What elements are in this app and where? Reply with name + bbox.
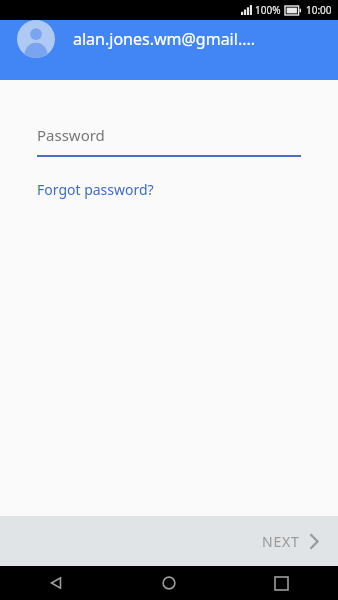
button[interactable]: Back (0, 566, 112, 600)
button[interactable]: Forgot password? (37, 178, 154, 201)
button[interactable]: Account avatar (0, 20, 338, 80)
staticText: alan.jones.wm@gmail.... (73, 28, 256, 50)
staticText: Password (37, 125, 105, 145)
other: Account avatar (17, 20, 55, 58)
button[interactable]: Recent apps (225, 566, 338, 600)
staticText: 10:00 (306, 3, 332, 17)
button[interactable]: Password (37, 125, 301, 157)
staticText: 100% (255, 3, 281, 17)
button[interactable]: Home (112, 566, 225, 600)
staticText: Forgot password? (37, 180, 154, 199)
staticText: NEXT (262, 532, 300, 551)
button[interactable]: NEXT (242, 522, 338, 561)
